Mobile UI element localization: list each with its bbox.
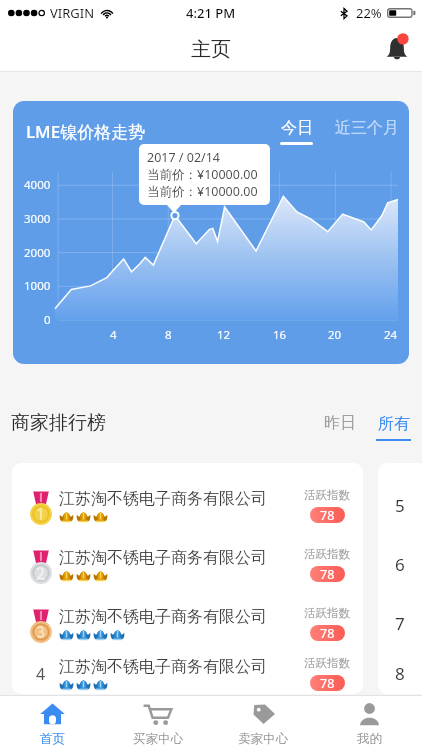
staticText: 2017 / 02/14 — [147, 149, 221, 166]
staticText: 78 — [320, 625, 335, 641]
staticText: 活跃指数 — [304, 488, 350, 502]
button[interactable]: 8 — [378, 653, 422, 694]
staticText: 近三个月 — [335, 118, 399, 138]
button[interactable]: 江苏淘不锈电子商务有限公司 — [12, 594, 363, 653]
staticText: LME镍价格走势 — [26, 120, 146, 143]
button[interactable]: 6 — [378, 535, 422, 594]
staticText: 4:21 PM — [186, 4, 236, 22]
staticText: 0 — [44, 312, 51, 328]
staticText: 20 — [328, 327, 342, 343]
staticText: 8 — [165, 327, 172, 343]
staticText: 首页 — [40, 731, 65, 747]
staticText: 今日 — [281, 118, 313, 138]
staticText: 7 — [395, 612, 405, 635]
button[interactable]: 卖家中心 — [210, 696, 316, 750]
staticText: 我的 — [357, 731, 382, 747]
staticText: 78 — [320, 675, 335, 691]
staticText: 8 — [395, 662, 405, 685]
button[interactable]: 所有 — [376, 410, 411, 437]
staticText: 当前价：¥10000.00 — [147, 166, 258, 183]
button[interactable]: 今日 — [280, 118, 313, 145]
staticText: 活跃指数 — [304, 606, 350, 620]
staticText: 16 — [273, 327, 287, 343]
staticText: 主页 — [191, 37, 231, 62]
button[interactable]: 买家中心 — [105, 696, 210, 750]
button[interactable]: 昨日 — [320, 407, 360, 439]
staticText: 2000 — [24, 245, 51, 261]
staticText: 昨日 — [324, 413, 356, 433]
button[interactable]: 江苏淘不锈电子商务有限公司 — [12, 476, 363, 535]
button[interactable]: 7 — [378, 594, 422, 653]
staticText: 4000 — [24, 177, 51, 193]
staticText: 6 — [395, 553, 405, 576]
staticText: 商家排行榜 — [11, 411, 106, 435]
staticText: 4 — [110, 327, 117, 343]
button[interactable]: 4 — [12, 653, 363, 694]
button[interactable]: 首页 — [0, 696, 105, 750]
staticText: 3000 — [24, 211, 51, 227]
staticText: 12 — [217, 327, 231, 343]
staticText: 买家中心 — [133, 731, 183, 747]
staticText: 江苏淘不锈电子商务有限公司 — [59, 548, 267, 568]
staticText: 活跃指数 — [304, 547, 350, 561]
staticText: 24 — [384, 327, 398, 343]
staticText: 78 — [320, 566, 335, 582]
staticText: 所有 — [378, 414, 410, 434]
button[interactable]: 江苏淘不锈电子商务有限公司 — [12, 535, 363, 594]
staticText: 江苏淘不锈电子商务有限公司 — [59, 489, 267, 509]
staticText: 江苏淘不锈电子商务有限公司 — [59, 607, 267, 627]
staticText: 当前价：¥10000.00 — [147, 183, 258, 200]
staticText: 卖家中心 — [238, 731, 288, 747]
staticText: 22% — [356, 4, 382, 22]
button[interactable]: 我的 — [316, 696, 422, 750]
staticText: 4 — [36, 663, 46, 685]
staticText: 78 — [320, 507, 335, 523]
staticText: 5 — [395, 494, 405, 517]
button[interactable]: 5 — [378, 476, 422, 535]
staticText: 江苏淘不锈电子商务有限公司 — [59, 657, 267, 677]
staticText: VIRGIN — [50, 4, 95, 22]
button[interactable]: Notifications — [382, 32, 412, 64]
staticText: 1000 — [24, 278, 51, 294]
staticText: 活跃指数 — [304, 656, 350, 670]
button[interactable]: 近三个月 — [335, 118, 399, 138]
